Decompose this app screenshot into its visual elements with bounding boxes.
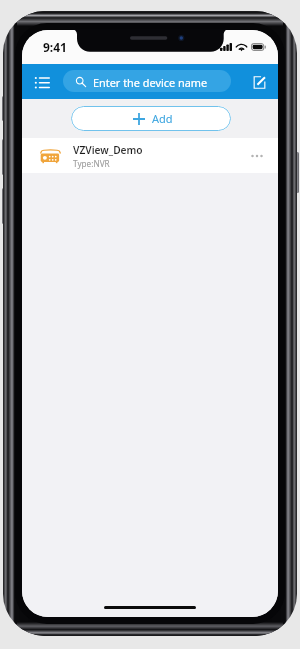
staticText: 9:41 — [43, 39, 67, 55]
staticText: Add — [152, 111, 173, 126]
staticText: Enter the device name — [93, 75, 208, 90]
staticText: VZView_Demo — [73, 143, 143, 157]
button[interactable]: Add — [71, 106, 231, 131]
button[interactable]: More options — [244, 143, 270, 169]
button[interactable]: Enter the device name — [63, 70, 231, 92]
staticText: Type:NVR — [73, 158, 110, 169]
button[interactable]: Menu — [30, 70, 54, 94]
button[interactable]: VZView_Demo — [22, 138, 278, 173]
button[interactable]: Compose — [248, 71, 270, 93]
